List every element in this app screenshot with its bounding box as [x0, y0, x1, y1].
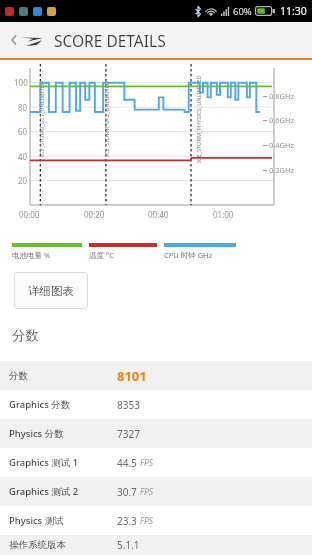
staticText: 00:00: [19, 209, 40, 220]
button[interactable]: Physics 分数: [0, 419, 312, 448]
staticText: 7327: [117, 427, 140, 441]
staticText: 温度 °C: [89, 250, 114, 260]
staticText: 01:00: [213, 209, 234, 220]
button[interactable]: 分数: [0, 361, 312, 390]
staticText: 44.5: [117, 456, 137, 470]
staticText: 60: [18, 126, 28, 137]
staticText: 分数: [12, 327, 39, 344]
staticText: FPS: [140, 457, 154, 469]
staticText: 详细图表: [28, 284, 74, 298]
button[interactable]: 详细图表: [14, 272, 88, 309]
staticText: 操作系统版本: [9, 539, 66, 551]
staticText: CPU 时钟 GHz: [164, 250, 213, 260]
staticText: Physics 分数: [9, 427, 64, 440]
staticText: 8101: [117, 367, 147, 385]
staticText: 00:40: [148, 209, 169, 220]
button[interactable]: Graphics 测试 2: [0, 477, 312, 506]
staticText: 0.6GHz: [269, 115, 295, 125]
staticText: 0.4GHz: [269, 140, 295, 150]
staticText: 电池电量 %: [12, 250, 51, 260]
staticText: ICE_STORM_GT2_UNLIMITED: [103, 81, 111, 157]
button[interactable]: 操作系统版本: [0, 535, 312, 555]
button[interactable]: Graphics 测试 1: [0, 448, 312, 477]
staticText: 40: [18, 151, 28, 162]
staticText: 80: [18, 102, 28, 113]
staticText: 8353: [117, 398, 140, 412]
staticText: ICE_STORM_GT1_UNLIMITED: [38, 81, 46, 157]
staticText: FPS: [140, 486, 154, 498]
staticText: 分数: [9, 370, 28, 382]
staticText: 60%: [233, 5, 252, 18]
staticText: FPS: [140, 515, 154, 527]
staticText: Graphics 测试 1: [9, 456, 79, 469]
staticText: 11:30: [280, 4, 307, 18]
staticText: 30.7: [117, 485, 137, 499]
staticText: 5.1.1: [117, 538, 140, 552]
staticText: SCORE DETAILS: [54, 30, 166, 51]
staticText: 100: [14, 77, 28, 88]
staticText: 00:20: [84, 209, 105, 220]
button[interactable]: Physics 测试: [0, 506, 312, 535]
staticText: 20: [18, 175, 28, 186]
staticText: Graphics 测试 2: [9, 485, 79, 498]
staticText: ICE_STORM_PHYSICS_UNLIMITED: [195, 75, 203, 163]
staticText: Graphics 分数: [9, 398, 71, 411]
button[interactable]: Back to score: [6, 22, 47, 58]
staticText: 23.3: [117, 514, 137, 528]
staticText: 0.8GHz: [269, 91, 295, 101]
staticText: Physics 测试: [9, 514, 64, 527]
button[interactable]: Graphics 分数: [0, 390, 312, 419]
staticText: 0.2GHz: [269, 165, 295, 175]
